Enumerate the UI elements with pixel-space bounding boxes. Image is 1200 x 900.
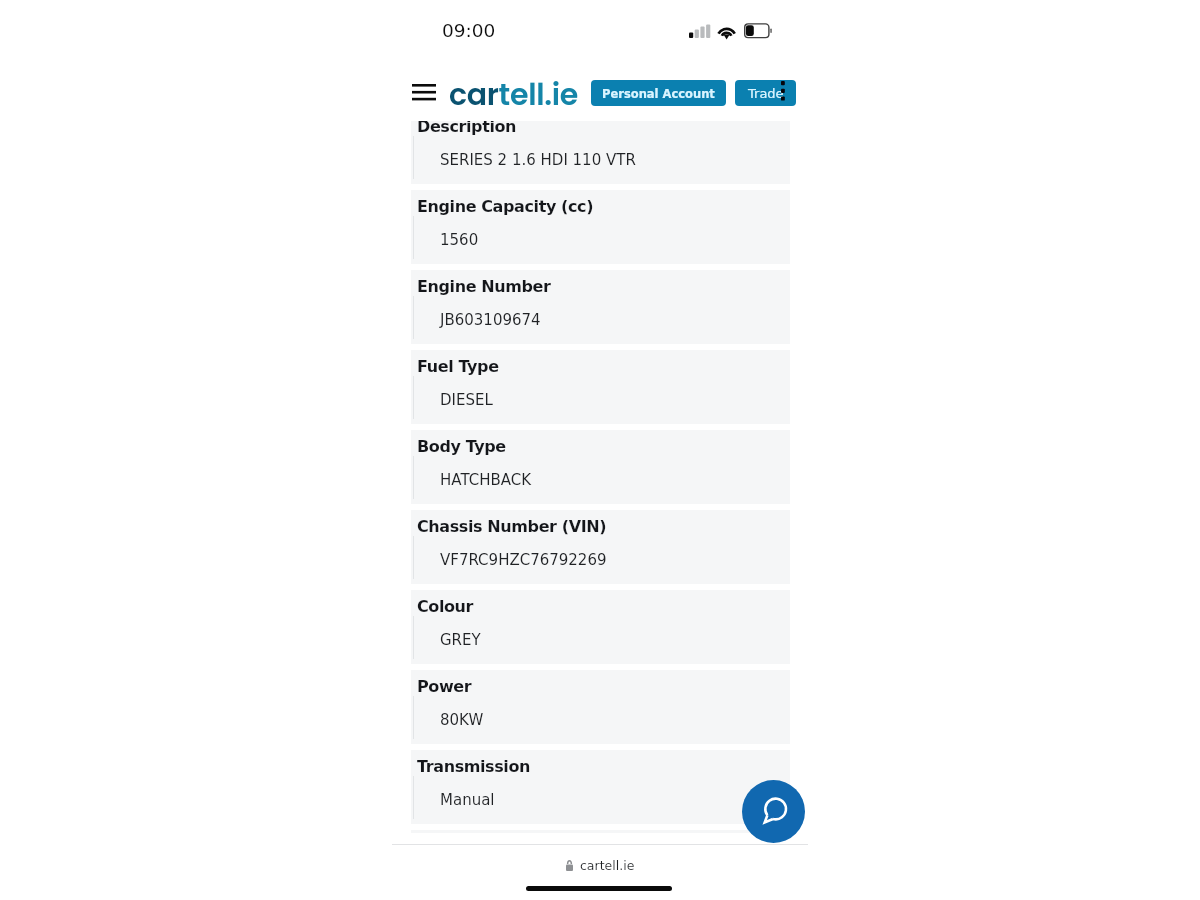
staticText: Description: [417, 121, 517, 136]
staticText: Colour: [417, 597, 474, 616]
button[interactable]: Engine Capacity (cc): [411, 190, 790, 264]
button[interactable]: Personal Account: [591, 80, 726, 106]
button[interactable]: Description: [411, 121, 790, 184]
button[interactable]: cartell.ie: [392, 856, 808, 874]
button[interactable]: Colour: [411, 590, 790, 664]
button[interactable]: Engine Number: [411, 270, 790, 344]
staticText: Engine Number: [417, 277, 551, 296]
button[interactable]: cartell.ie: [449, 74, 578, 116]
staticText: Manual: [440, 791, 495, 808]
staticText: VF7RC9HZC76792269: [440, 551, 607, 568]
staticText: JB603109674: [440, 311, 541, 328]
staticText: Power: [417, 677, 472, 696]
button[interactable]: Body Type: [411, 430, 790, 504]
staticText: Transmission: [417, 757, 531, 776]
staticText: Engine Capacity (cc): [417, 197, 594, 216]
staticText: Personal Account: [602, 87, 715, 100]
button[interactable]: Fuel Type: [411, 350, 790, 424]
button[interactable]: Trade: [735, 80, 796, 106]
staticText: Chassis Number (VIN): [417, 517, 607, 536]
staticText: SERIES 2 1.6 HDI 110 VTR: [440, 151, 636, 168]
staticText: 1560: [440, 231, 479, 248]
staticText: DIESEL: [440, 391, 493, 408]
button[interactable]: Mark: [411, 830, 790, 833]
staticText: cartell.ie: [449, 74, 578, 116]
staticText: 09:00: [442, 20, 496, 42]
staticText: Body Type: [417, 437, 506, 456]
staticText: 80KW: [440, 711, 484, 728]
button[interactable]: Chassis Number (VIN): [411, 510, 790, 584]
button[interactable]: Transmission: [411, 750, 790, 824]
button[interactable]: Power: [411, 670, 790, 744]
staticText: HATCHBACK: [440, 471, 532, 488]
staticText: GREY: [440, 631, 481, 648]
staticText: Fuel Type: [417, 357, 499, 376]
button[interactable]: Chat: [742, 780, 805, 843]
button[interactable]: More options: [773, 75, 793, 107]
staticText: Trade: [748, 86, 784, 101]
button[interactable]: Menu: [404, 76, 444, 108]
staticText: cartell.ie: [580, 858, 635, 873]
